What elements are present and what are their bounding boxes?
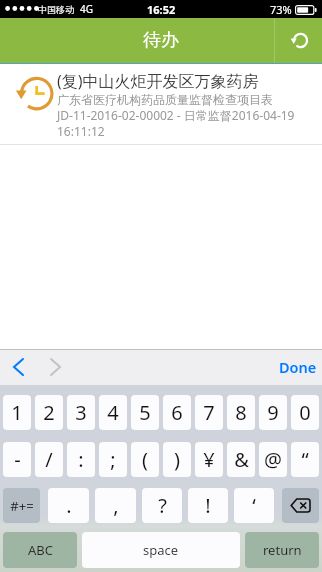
staticText: 6 <box>171 399 183 426</box>
staticText: 1 <box>11 399 23 426</box>
staticText: ) <box>174 446 180 473</box>
button[interactable]: Delete <box>282 488 319 523</box>
button[interactable]: “ <box>291 442 319 477</box>
staticText: 9 <box>267 399 279 426</box>
staticText: - <box>14 446 21 473</box>
staticText: return <box>263 541 302 559</box>
button[interactable]: ! <box>188 488 228 523</box>
button[interactable]: & <box>227 442 255 477</box>
button[interactable]: 1 <box>3 395 31 430</box>
button[interactable]: 0 <box>291 395 319 430</box>
button[interactable]: Refresh <box>275 18 322 63</box>
button[interactable]: . <box>48 488 89 523</box>
button[interactable]: : <box>67 442 95 477</box>
staticText: 4G <box>80 2 93 16</box>
staticText: JD-11-2016-02-00002 - 日常监督2016-04-19 16:… <box>57 107 295 139</box>
button[interactable]: return <box>245 532 319 568</box>
button[interactable]: ? <box>142 488 182 523</box>
button[interactable]: 8 <box>227 395 255 430</box>
button[interactable]: #+= <box>3 488 40 523</box>
staticText: ABC <box>28 541 53 559</box>
staticText: & <box>234 446 249 473</box>
button[interactable]: ( <box>131 442 159 477</box>
staticText: #+= <box>10 497 34 515</box>
staticText: 7 <box>203 399 215 426</box>
button[interactable]: space <box>82 532 240 568</box>
staticText: 中国移动 <box>38 4 74 15</box>
staticText: 8 <box>235 399 247 426</box>
button[interactable]: , <box>95 488 136 523</box>
button[interactable]: / <box>35 442 63 477</box>
staticText: . <box>66 492 72 519</box>
staticText: ; <box>110 446 116 473</box>
button[interactable]: 2 <box>35 395 63 430</box>
staticText: ¥ <box>203 446 215 473</box>
button[interactable]: 5 <box>131 395 159 430</box>
button[interactable]: 9 <box>259 395 287 430</box>
button[interactable]: Next field <box>42 350 68 384</box>
button[interactable]: 3 <box>67 395 95 430</box>
button[interactable]: Done <box>275 349 321 385</box>
button[interactable]: ‘ <box>234 488 274 523</box>
staticText: ? <box>158 492 167 519</box>
staticText: ‘ <box>252 492 256 519</box>
staticText: 2 <box>43 399 55 426</box>
button[interactable]: @ <box>259 442 287 477</box>
staticText: ! <box>205 492 211 519</box>
staticText: 5 <box>139 399 151 426</box>
button[interactable]: (复)中山火炬开发区万象药房 <box>0 64 322 145</box>
staticText: Done <box>279 357 317 377</box>
staticText: 待办 <box>143 29 179 52</box>
button[interactable]: 6 <box>163 395 191 430</box>
staticText: 3 <box>75 399 87 426</box>
staticText: 4 <box>107 399 119 426</box>
staticText: (复)中山火炬开发区万象药房 <box>57 70 259 92</box>
staticText: space <box>143 541 179 559</box>
staticText: @ <box>264 446 282 473</box>
staticText: 广东省医疗机构药品质量监督检查项目表 <box>57 92 273 107</box>
staticText: / <box>45 446 53 473</box>
staticText: , <box>113 492 119 519</box>
button[interactable]: 7 <box>195 395 223 430</box>
button[interactable]: ¥ <box>195 442 223 477</box>
staticText: : <box>78 446 84 473</box>
button[interactable]: - <box>3 442 31 477</box>
staticText: 73% <box>270 2 292 17</box>
button[interactable]: Previous field <box>5 350 31 384</box>
staticText: 0 <box>299 399 311 426</box>
staticText: 16:52 <box>147 2 176 17</box>
button[interactable]: ABC <box>3 532 77 568</box>
staticText: “ <box>301 446 309 473</box>
button[interactable]: ) <box>163 442 191 477</box>
button[interactable]: ; <box>99 442 127 477</box>
staticText: ( <box>142 446 148 473</box>
button[interactable]: 4 <box>99 395 127 430</box>
